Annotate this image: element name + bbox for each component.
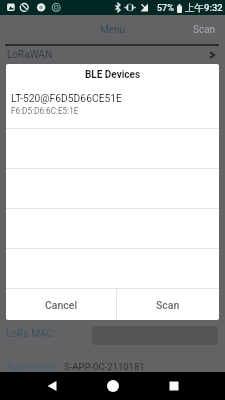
staticText: Menu (100, 24, 126, 36)
staticText: S-APP-0C-2110181 (64, 361, 145, 372)
button[interactable]: Cancel (6, 289, 116, 320)
staticText: 57% (157, 3, 174, 14)
staticText: App version: (6, 361, 59, 372)
staticText: Scan (156, 299, 180, 311)
button[interactable]: LoRaWAN (0, 47, 225, 63)
staticText: Scan (193, 24, 216, 36)
button[interactable]: Home (101, 374, 125, 398)
button[interactable]: LT-520@F6D5D66CE51E (6, 88, 219, 128)
staticText: 上午9:32 (185, 2, 223, 14)
button[interactable]: Back (40, 374, 64, 398)
staticText: F6:D5:D6:6C:E5:1E (11, 106, 79, 116)
button[interactable]: Recent apps (162, 374, 186, 398)
button[interactable]: Scan (117, 289, 219, 320)
staticText: LoRa MAC: (6, 328, 56, 340)
staticText: Cancel (45, 299, 78, 311)
staticText: LT-520@F6D5D66CE51E (11, 92, 122, 104)
staticText: BLE Devices (6, 69, 219, 81)
staticText: LoRaWAN (7, 49, 53, 61)
button[interactable]: Scan (193, 15, 216, 44)
